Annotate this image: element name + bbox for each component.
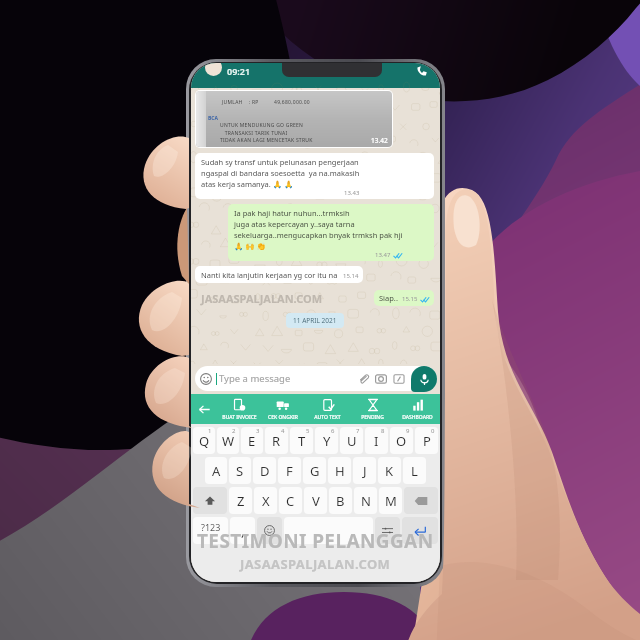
button[interactable]: D	[253, 457, 276, 484]
button[interactable]: BUAT INVOICE	[217, 394, 261, 424]
button[interactable]: B	[329, 487, 352, 514]
staticText: E	[248, 432, 256, 450]
button[interactable]: A	[205, 457, 227, 484]
button[interactable]: Ia pak haji hatur nuhun...trmksih juga a…	[228, 204, 434, 261]
button[interactable]: AUTO TEXT	[305, 394, 350, 424]
staticText: 11 APRIL 2021	[293, 316, 337, 325]
button[interactable]: U	[340, 427, 363, 454]
button[interactable]: Backspace	[404, 487, 438, 514]
button[interactable]: E	[241, 427, 263, 454]
button[interactable]: X	[254, 487, 277, 514]
staticText: F	[286, 462, 293, 480]
button[interactable]: P	[415, 427, 438, 454]
staticText: W	[222, 432, 235, 450]
button[interactable]: H	[328, 457, 351, 484]
staticText: Ia pak haji hatur nuhun...trmksih juga a…	[234, 208, 403, 251]
button[interactable]: C	[279, 487, 302, 514]
button[interactable]: S	[229, 457, 251, 484]
button[interactable]: Emoji	[195, 366, 437, 391]
button[interactable]: Emoji	[200, 373, 212, 385]
button[interactable]: Transfer receipt photo, 13.42	[195, 90, 393, 148]
staticText: Q	[199, 432, 210, 450]
staticText: 1	[208, 427, 212, 435]
button[interactable]: L	[403, 457, 426, 484]
button[interactable]: Siap..	[374, 290, 434, 306]
staticText: T	[298, 432, 306, 450]
staticText: X	[262, 492, 270, 510]
button[interactable]: M	[379, 487, 402, 514]
staticText: ,	[241, 522, 245, 540]
button[interactable]: Contact avatar	[205, 63, 222, 76]
staticText: AUTO TEXT	[314, 414, 341, 421]
staticText: P	[423, 432, 431, 450]
staticText: JASAASPALJALAN.COM	[240, 555, 391, 573]
staticText: N	[361, 492, 371, 510]
button[interactable]: Back	[191, 394, 217, 424]
button[interactable]: Record voice message	[411, 366, 437, 392]
staticText: BCA	[208, 115, 218, 122]
button[interactable]: J	[353, 457, 376, 484]
button[interactable]: Z	[229, 487, 252, 514]
staticText: 7	[356, 427, 360, 435]
staticText: J	[363, 462, 367, 480]
button[interactable]: N	[354, 487, 377, 514]
button[interactable]: Shift	[193, 487, 227, 514]
button[interactable]: DASHBOARD	[395, 394, 440, 424]
staticText: CEK ONGKIR	[268, 414, 298, 421]
button[interactable]: ?123	[193, 517, 228, 544]
button[interactable]: Emoji	[257, 517, 282, 544]
staticText: BUAT INVOICE	[222, 414, 257, 421]
staticText: ?123	[201, 521, 221, 533]
button[interactable]: Nanti kita lanjutin kerjaan yg cor itu n…	[195, 266, 363, 283]
button[interactable]: Q	[193, 427, 215, 454]
staticText: O	[396, 432, 407, 450]
staticText: A	[212, 462, 221, 480]
button[interactable]: Camera	[375, 373, 387, 385]
button[interactable]: G	[303, 457, 326, 484]
staticText: UNTUK MENDUKUNG GO GREEN TRANSAKSI TARIK…	[220, 122, 313, 143]
button[interactable]: Attach	[358, 373, 369, 384]
button[interactable]: Slash command	[393, 373, 405, 385]
staticText: 4	[281, 427, 285, 435]
staticText: K	[385, 462, 394, 480]
button[interactable]: Symbols	[375, 517, 400, 544]
button[interactable]: V	[304, 487, 327, 514]
staticText: 09:21	[227, 65, 251, 77]
button[interactable]: T	[290, 427, 313, 454]
button[interactable]: Y	[315, 427, 338, 454]
button[interactable]: Enter	[402, 517, 438, 544]
staticText: H	[335, 462, 345, 480]
button[interactable]: K	[378, 457, 401, 484]
staticText: 2	[232, 427, 236, 435]
button[interactable]: ,	[230, 517, 255, 544]
staticText: B	[336, 492, 345, 510]
staticText: 6	[331, 427, 335, 435]
staticText: D	[260, 462, 270, 480]
staticText: 13.43	[344, 189, 360, 197]
staticText: Sudah sy transf untuk pelunasan pengerja…	[201, 157, 360, 189]
button[interactable]: CEK ONGKIR	[261, 394, 305, 424]
staticText: PENDING	[361, 414, 384, 421]
button[interactable]: Voice call	[416, 65, 428, 77]
button[interactable]: Sudah sy transf untuk pelunasan pengerja…	[195, 153, 434, 199]
button[interactable]: F	[278, 457, 301, 484]
staticText: Y	[323, 432, 331, 450]
button[interactable]: W	[217, 427, 239, 454]
staticText: 13.47	[375, 251, 391, 259]
button[interactable]: I	[365, 427, 388, 454]
staticText: 3	[256, 427, 260, 435]
button[interactable]: R	[265, 427, 288, 454]
staticText: 15.15	[402, 295, 418, 303]
staticText: 0	[431, 427, 435, 435]
staticText: S	[236, 462, 244, 480]
staticText: 9	[406, 427, 410, 435]
staticText: Nanti kita lanjutin kerjaan yg cor itu n…	[201, 270, 338, 280]
button[interactable]: PENDING	[350, 394, 395, 424]
button[interactable]: Space	[284, 517, 373, 544]
staticText: 13.42	[371, 136, 388, 145]
staticText: C	[286, 492, 295, 510]
staticText: DASHBOARD	[402, 414, 433, 421]
staticText: JASAASPALJALAN.COM	[201, 291, 323, 306]
button[interactable]: O	[390, 427, 413, 454]
staticText: TESTIMONI PELANGGAN	[197, 528, 434, 554]
